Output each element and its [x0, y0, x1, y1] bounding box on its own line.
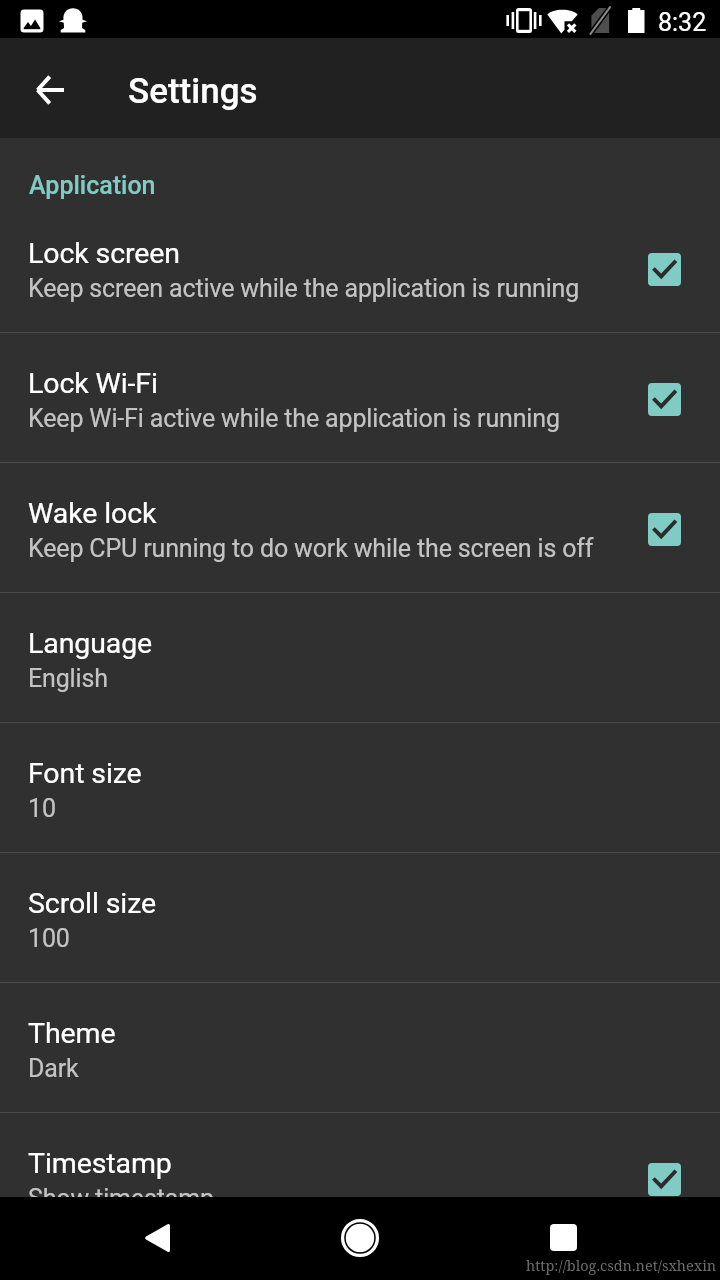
button[interactable]: Toggle setting: [648, 513, 681, 546]
button[interactable]: Toggle setting: [648, 1163, 681, 1196]
button[interactable]: Toggle setting: [648, 383, 681, 416]
staticText: Keep Wi-Fi active while the application …: [28, 404, 560, 433]
button[interactable]: Recent apps: [523, 1197, 603, 1280]
staticText: Show timestamp: [28, 1184, 214, 1197]
button[interactable]: Toggle setting: [648, 253, 681, 286]
staticText: Lock screen: [28, 237, 180, 270]
button[interactable]: Theme: [0, 983, 720, 1112]
staticText: 8:32: [658, 8, 707, 37]
button[interactable]: Scroll size: [0, 853, 720, 982]
button[interactable]: Wake lock: [0, 463, 720, 592]
button[interactable]: Home: [320, 1197, 400, 1280]
staticText: Font size: [28, 757, 142, 790]
button[interactable]: Language: [0, 593, 720, 722]
staticText: Keep screen active while the application…: [28, 274, 580, 303]
staticText: Language: [28, 627, 153, 660]
button[interactable]: Navigate up: [21, 60, 77, 116]
staticText: Scroll size: [28, 887, 156, 920]
staticText: Dark: [28, 1054, 79, 1083]
staticText: Settings: [128, 71, 258, 112]
button[interactable]: Lock Wi-Fi: [0, 333, 720, 462]
button[interactable]: Font size: [0, 723, 720, 852]
button[interactable]: Back: [117, 1197, 197, 1280]
staticText: Theme: [28, 1017, 116, 1050]
staticText: http://blog.csdn.net/sxhexin: [526, 1255, 717, 1275]
staticText: 10: [28, 794, 56, 823]
staticText: English: [28, 664, 108, 693]
staticText: 100: [28, 924, 70, 953]
button[interactable]: Lock screen: [0, 203, 720, 332]
button[interactable]: Timestamp: [0, 1113, 720, 1197]
staticText: Timestamp: [28, 1147, 172, 1180]
staticText: Wake lock: [28, 497, 157, 530]
staticText: Lock Wi-Fi: [28, 367, 158, 400]
staticText: Application: [29, 171, 156, 200]
staticText: Keep CPU running to do work while the sc…: [28, 534, 594, 563]
